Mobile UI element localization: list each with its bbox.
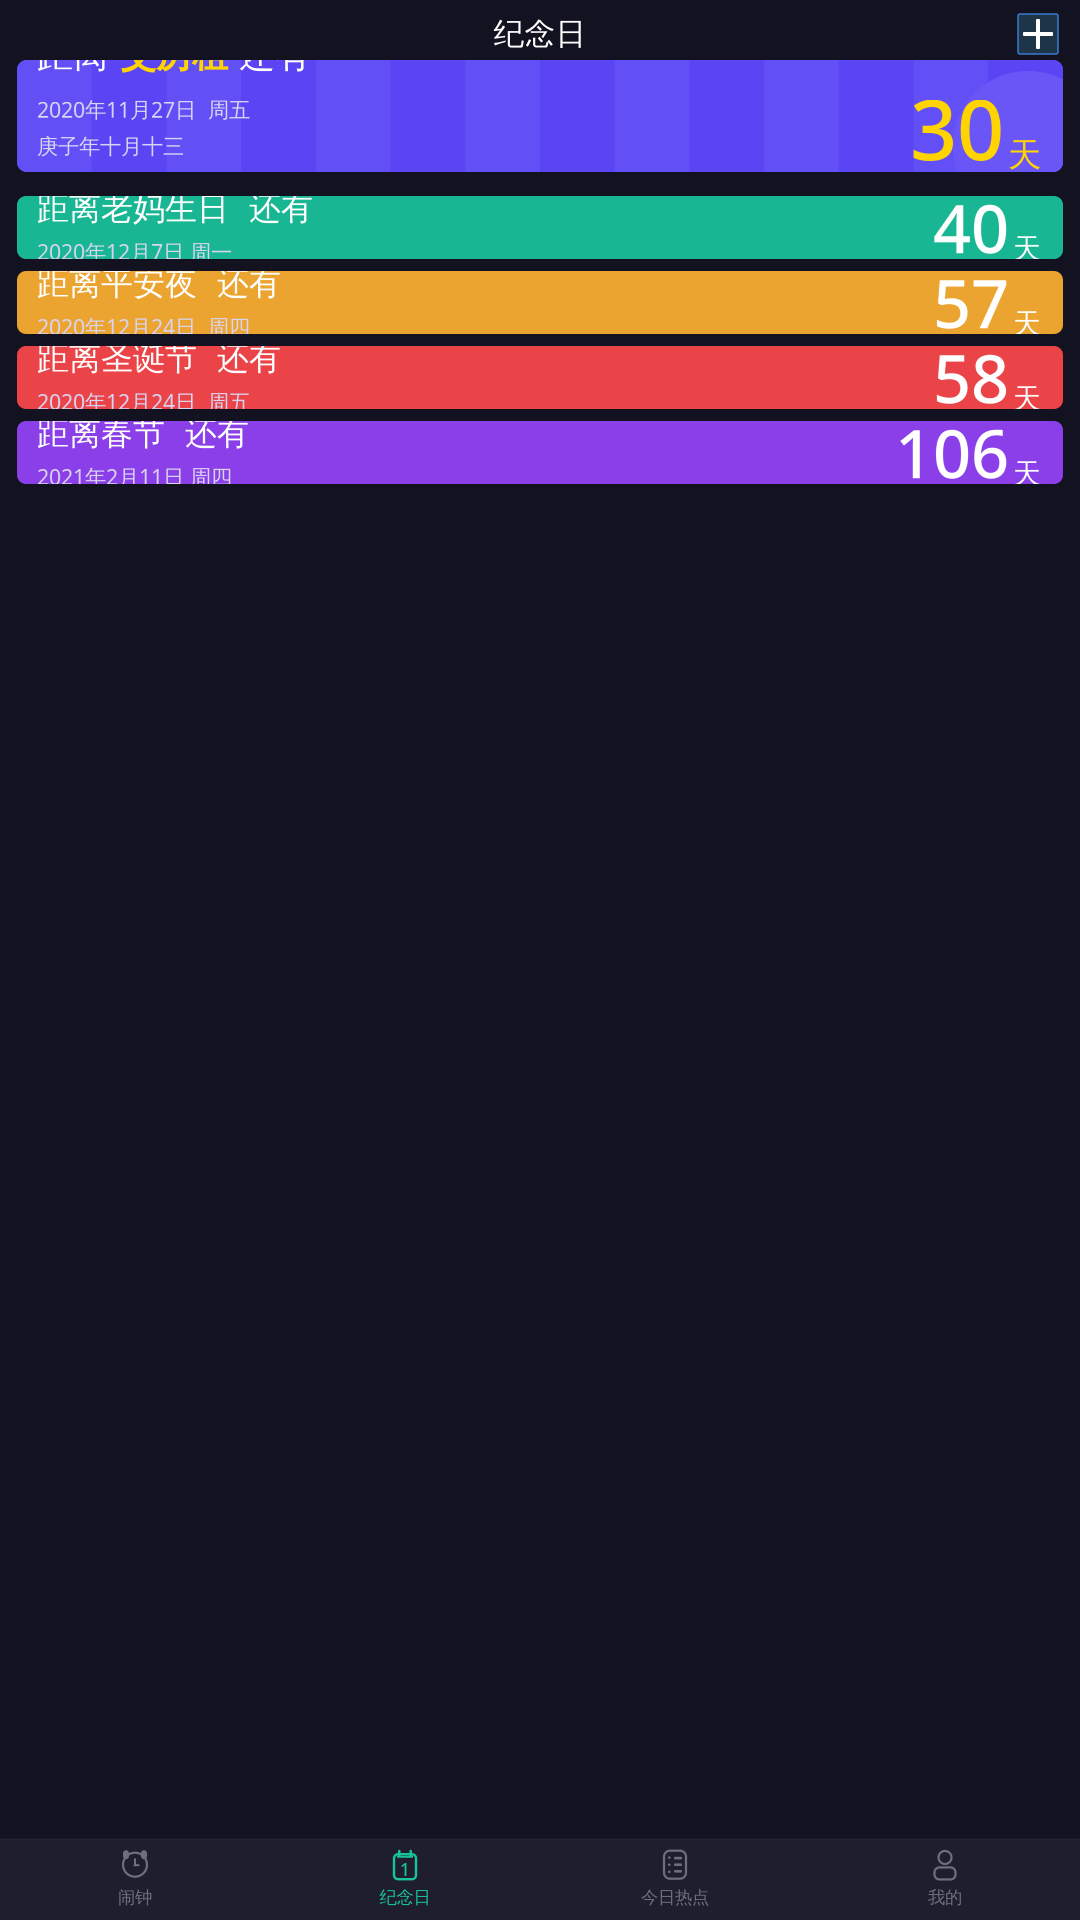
button[interactable]: 添加纪念日 bbox=[1018, 14, 1058, 54]
staticText: 2020年12月24日 周五 bbox=[37, 387, 250, 416]
staticText: 2020年12月24日 周四 bbox=[37, 312, 250, 341]
staticText: 浦东新区 16-20° 多云转阴 bbox=[64, 176, 341, 206]
staticText: 30 bbox=[910, 73, 1004, 183]
staticText: 距离 bbox=[37, 33, 120, 77]
staticText: 今日热点 bbox=[641, 1887, 709, 1908]
button[interactable]: 距离圣诞节 还有 bbox=[17, 346, 1063, 409]
staticText: 天 bbox=[1013, 456, 1041, 491]
staticText: 天 bbox=[1008, 134, 1041, 175]
staticText: 57 bbox=[933, 258, 1009, 347]
staticText: 距离平安夜 还有 bbox=[37, 264, 281, 303]
staticText: 天 bbox=[1013, 306, 1041, 341]
button[interactable]: 1 bbox=[270, 1840, 540, 1920]
staticText: 距离春节 还有 bbox=[37, 414, 249, 453]
staticText: 纪念日 bbox=[379, 1887, 430, 1908]
button[interactable]: 距离春节 还有 bbox=[17, 421, 1063, 484]
staticText: 2020年11月27日 周五 bbox=[37, 95, 250, 123]
staticText: 闹钟 bbox=[118, 1887, 152, 1908]
staticText: 106 bbox=[895, 408, 1009, 497]
staticText: 交房租 bbox=[120, 33, 228, 77]
button[interactable]: 今日热点 bbox=[540, 1840, 810, 1920]
staticText: 40 bbox=[933, 183, 1009, 272]
staticText: 1 bbox=[400, 1858, 410, 1881]
button[interactable]: 距离老妈生日 还有 bbox=[17, 196, 1063, 259]
button[interactable]: 距离 bbox=[17, 60, 1063, 172]
staticText: 距离圣诞节 还有 bbox=[37, 339, 281, 378]
staticText: 我的 bbox=[928, 1887, 962, 1908]
button[interactable]: 距离平安夜 还有 bbox=[17, 271, 1063, 334]
staticText: 2020年12月7日 周一 bbox=[37, 237, 232, 266]
staticText: 庚子年十月十三 bbox=[37, 133, 184, 160]
staticText: 天 bbox=[1013, 231, 1041, 266]
staticText: 58 bbox=[933, 333, 1009, 422]
staticText: 还有 bbox=[228, 33, 311, 77]
button[interactable]: 闹钟 bbox=[0, 1840, 270, 1920]
staticText: 天 bbox=[1013, 381, 1041, 416]
staticText: 2021年2月11日 周四 bbox=[37, 462, 232, 491]
button[interactable]: 我的 bbox=[810, 1840, 1080, 1920]
staticText: 距离老妈生日 还有 bbox=[37, 189, 313, 228]
staticText: 纪念日 bbox=[493, 15, 586, 53]
